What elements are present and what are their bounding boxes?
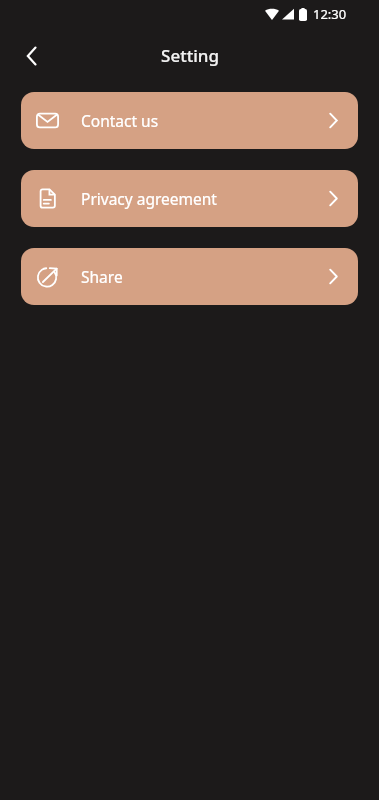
staticText: Contact us <box>81 110 159 131</box>
staticText: 12:30 <box>313 5 347 23</box>
button[interactable]: Privacy agreement <box>21 170 358 227</box>
staticText: Share <box>81 266 123 287</box>
button[interactable]: Back <box>14 38 50 74</box>
button[interactable]: Share <box>21 248 358 305</box>
staticText: Setting <box>161 44 219 67</box>
button[interactable]: Contact us <box>21 92 358 149</box>
staticText: Privacy agreement <box>81 188 217 209</box>
